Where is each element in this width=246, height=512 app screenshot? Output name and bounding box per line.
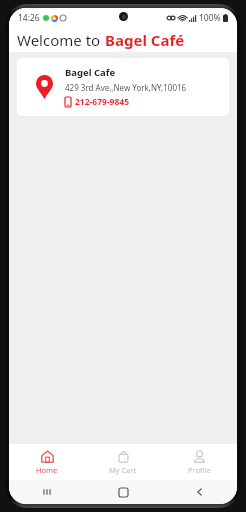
other: Home — [41, 450, 54, 463]
staticText: 14:26 — [18, 12, 40, 24]
button[interactable]: Home — [85, 480, 161, 504]
staticText: Profile — [188, 465, 211, 475]
staticText: Welcome to — [17, 30, 105, 50]
button[interactable]: Back — [161, 480, 237, 504]
staticText: Bagel Café — [105, 30, 185, 50]
staticText: Home — [36, 465, 58, 475]
button[interactable]: Recent apps — [9, 480, 85, 504]
other: My Cart — [117, 450, 130, 463]
button[interactable]: Profile — [161, 444, 237, 480]
button[interactable]: Home — [9, 444, 85, 480]
staticText: Bagel Cafe — [65, 66, 116, 79]
staticText: 212-679-9845 — [75, 96, 130, 108]
staticText: My Cart — [109, 465, 137, 475]
staticText: 429 3rd Ave.,New York,NY,10016 — [65, 82, 187, 93]
staticText: 100% — [199, 12, 221, 24]
other: Profile — [193, 450, 206, 463]
button[interactable]: Bagel Cafe — [17, 58, 229, 116]
button[interactable]: My Cart — [85, 444, 161, 480]
